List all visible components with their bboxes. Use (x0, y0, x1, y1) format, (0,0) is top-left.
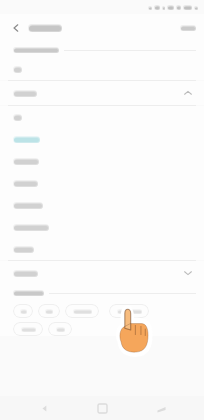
button[interactable]: Filter chip (38, 304, 60, 318)
button[interactable] (0, 128, 204, 150)
button[interactable]: Navigate up (8, 20, 24, 36)
button[interactable] (0, 261, 204, 285)
button[interactable] (0, 81, 204, 105)
button[interactable] (0, 194, 204, 216)
button[interactable] (0, 150, 204, 172)
button[interactable]: More options (178, 23, 198, 33)
button[interactable] (0, 106, 204, 128)
button[interactable] (0, 172, 204, 194)
button[interactable]: Filter chip (65, 304, 99, 318)
button[interactable] (0, 238, 204, 260)
button[interactable] (0, 216, 204, 238)
button[interactable]: Recent apps (146, 396, 176, 420)
button[interactable]: Filter chip (109, 304, 149, 318)
button[interactable]: Filter chip (48, 322, 72, 336)
button[interactable]: Filter chip (13, 304, 33, 318)
button[interactable] (0, 58, 204, 80)
button[interactable]: Home (87, 396, 117, 420)
button[interactable]: Filter chip (13, 322, 43, 336)
